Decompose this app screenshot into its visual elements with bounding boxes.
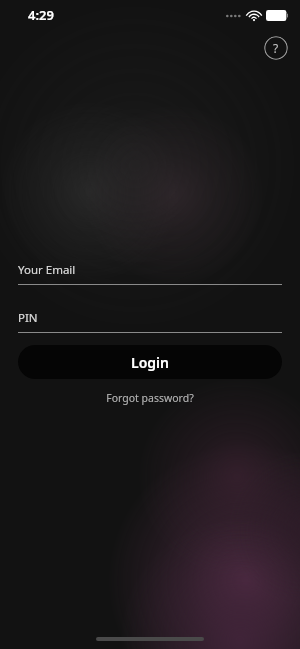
button[interactable]: PIN <box>18 310 282 333</box>
staticText: Login <box>131 353 169 372</box>
button[interactable]: Your Email <box>18 262 282 285</box>
staticText: Your Email <box>18 262 76 278</box>
staticText: 4:29 <box>28 6 54 24</box>
button[interactable]: Help <box>264 36 288 60</box>
staticText: ? <box>273 40 279 56</box>
button[interactable]: Login <box>18 345 282 379</box>
staticText: PIN <box>18 310 38 326</box>
button[interactable]: Forgot password? <box>100 389 200 407</box>
